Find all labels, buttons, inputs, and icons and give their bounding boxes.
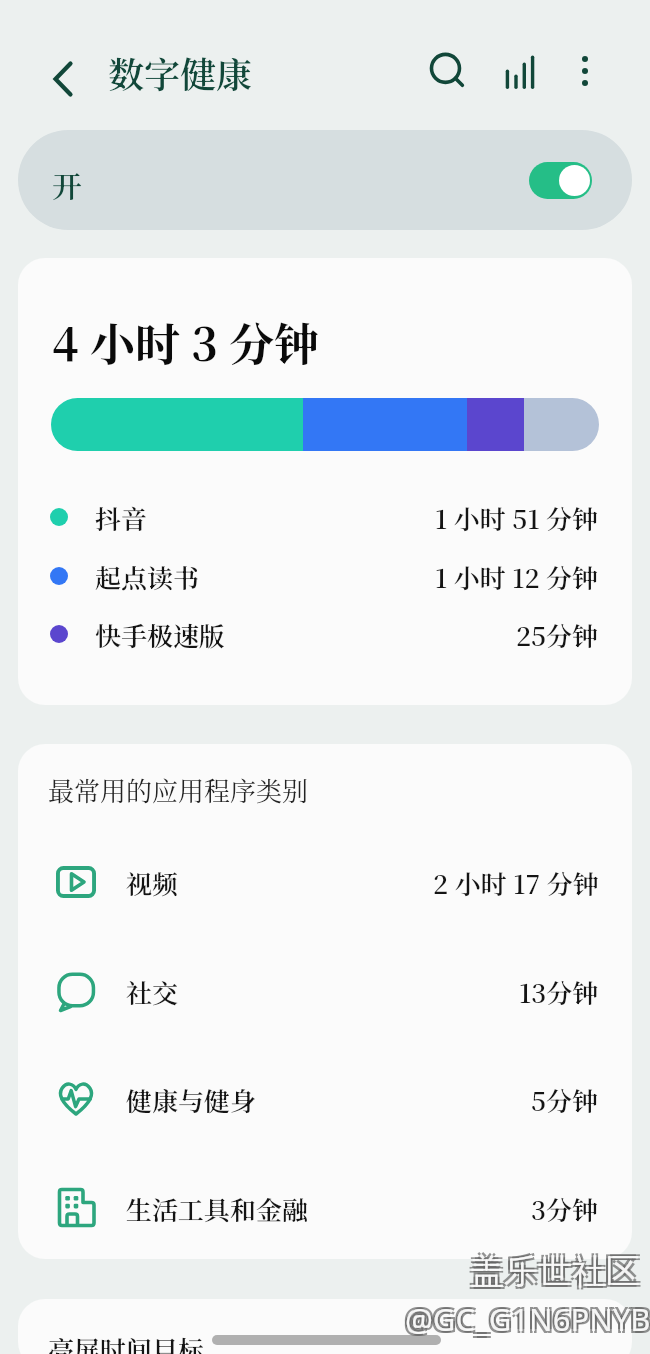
staticText: 13分钟 [519,973,599,1010]
staticText: 盖乐世社区 [470,1250,640,1293]
staticText: 亮屏时间目标 [48,1330,205,1354]
staticText: @GC_G1N6PNYB [407,1300,650,1342]
button[interactable]: Usage statistics [485,37,555,107]
staticText: 1 小时 12 分钟 [435,558,599,595]
button[interactable]: Social [18,946,632,1036]
staticText: @GC_G1N6PNYB [405,1298,650,1340]
staticText: 1 小时 51 分钟 [435,499,599,536]
button[interactable]: 快手极速版 [18,610,632,658]
button[interactable]: More options [551,37,619,105]
other: Lifestyle and finance [54,1186,98,1230]
staticText: @GC_G1N6PNYB [403,1296,649,1338]
button[interactable]: Search [413,37,481,105]
staticText: 开 [52,163,82,206]
staticText: 5分钟 [531,1081,599,1118]
other: Video [54,860,98,904]
staticText: 盖乐世社区 [468,1248,638,1291]
staticText: 3分钟 [531,1190,599,1227]
button[interactable]: Video [18,837,632,927]
staticText: 盖乐世社区 [472,1252,642,1295]
staticText: 抖音 [95,499,148,536]
button[interactable]: 4 小时 3 分钟 [18,258,632,705]
button[interactable]: Health and fitness [18,1054,632,1144]
button[interactable]: 开 [18,130,632,230]
button[interactable]: Lifestyle and finance [18,1163,632,1253]
staticText: 最常用的应用程序类别 [48,771,309,808]
staticText: 盖乐世社区 [472,1248,642,1291]
button[interactable]: 亮屏时间目标 [18,1299,632,1354]
other: Social [54,969,98,1013]
staticText: @GC_G1N6PNYB [403,1300,649,1342]
other: Health and fitness [54,1077,98,1121]
staticText: 健康与健身 [126,1081,257,1118]
staticText: 生活工具和金融 [126,1190,309,1227]
button[interactable]: 起点读书 [18,552,632,600]
staticText: 视频 [126,864,179,901]
button[interactable]: 抖音 [18,493,632,541]
staticText: 起点读书 [95,558,200,595]
staticText: 快手极速版 [95,616,226,653]
staticText: 社交 [126,973,179,1010]
staticText: @GC_G1N6PNYB [407,1296,650,1338]
button[interactable]: Back [28,44,98,114]
staticText: 盖乐世社区 [468,1252,638,1295]
staticText: 2 小时 17 分钟 [433,864,599,901]
staticText: 数字健康 [108,47,253,99]
staticText: 25分钟 [516,616,599,653]
staticText: 4 小时 3 分钟 [52,309,320,374]
